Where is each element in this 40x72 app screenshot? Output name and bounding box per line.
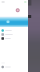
- button[interactable]: [0, 65, 28, 69]
- button[interactable]: [0, 36, 28, 40]
- button[interactable]: [0, 32, 28, 36]
- button[interactable]: [0, 28, 28, 32]
